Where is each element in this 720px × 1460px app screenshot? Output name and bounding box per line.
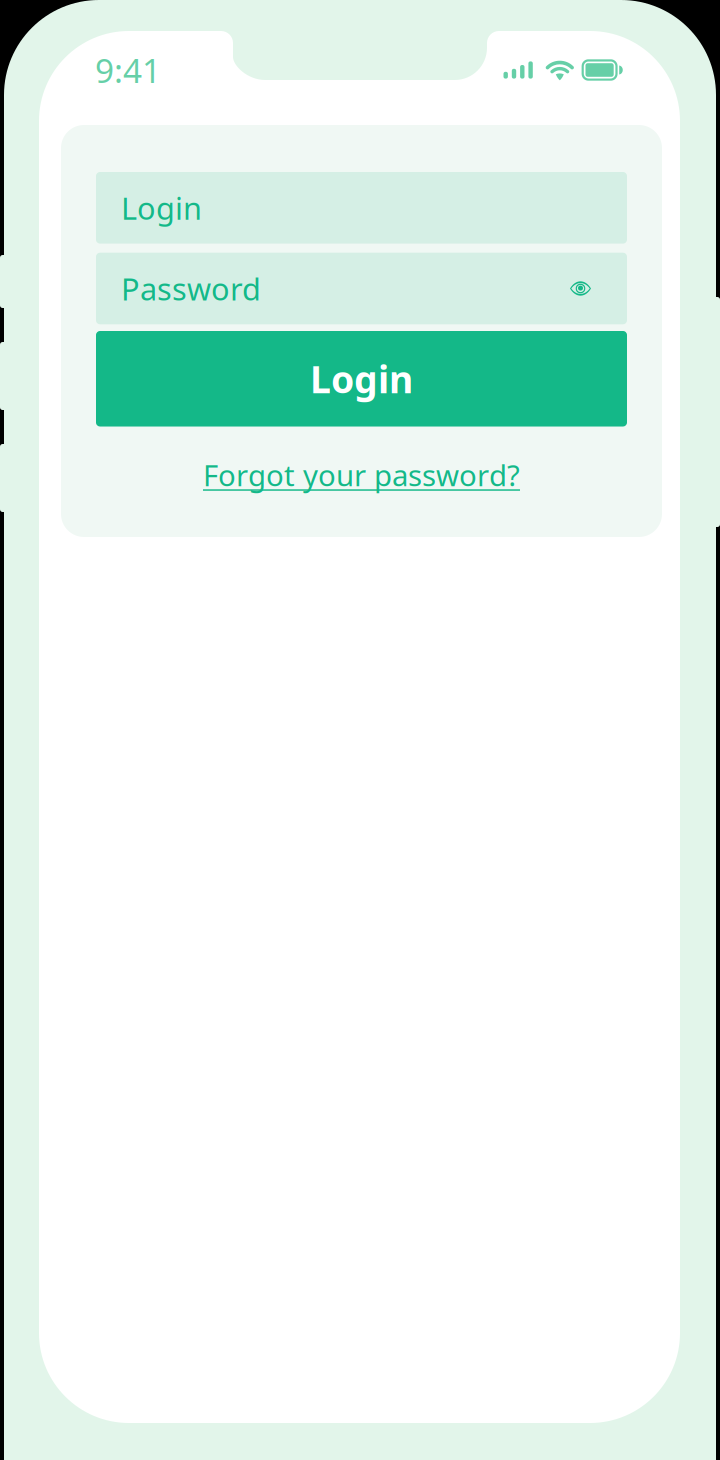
button[interactable]: Login xyxy=(96,172,627,244)
staticText: Login xyxy=(310,354,413,404)
staticText: 9:41 xyxy=(95,48,161,92)
button[interactable]: Password xyxy=(96,253,627,324)
staticText: Password xyxy=(121,268,261,309)
button[interactable]: Login xyxy=(96,331,627,426)
button[interactable]: Show password xyxy=(551,259,609,317)
staticText: Forgot your password? xyxy=(203,455,520,494)
staticText: Login xyxy=(121,187,202,228)
button[interactable]: Forgot your password? xyxy=(203,455,520,494)
